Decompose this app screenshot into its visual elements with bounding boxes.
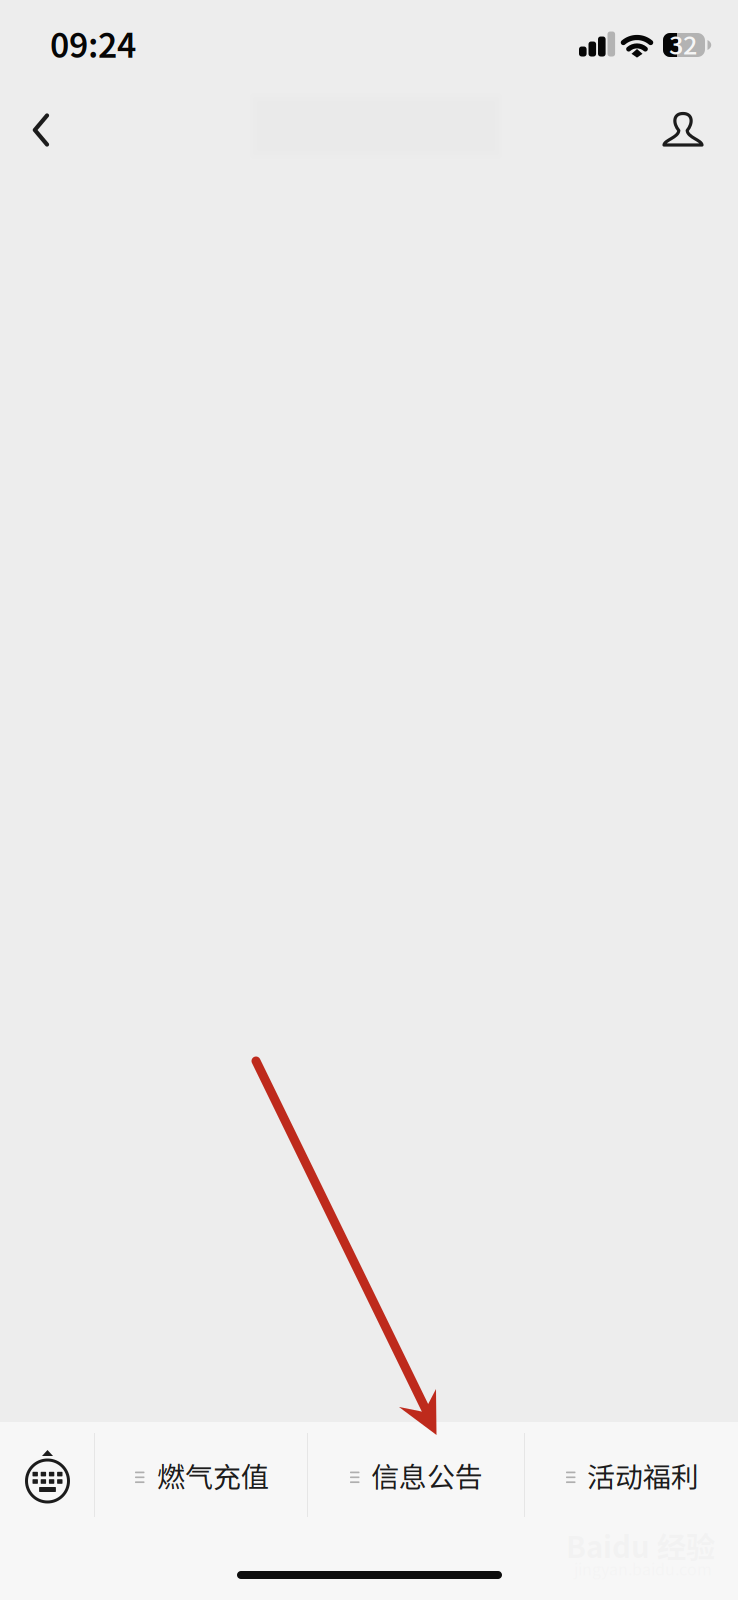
button[interactable]: Contact xyxy=(643,90,723,170)
staticText: 32 xyxy=(669,25,697,62)
button[interactable]: 燃气充值 xyxy=(95,1424,307,1524)
staticText: 信息公告 xyxy=(371,1455,483,1495)
button[interactable]: Keyboard xyxy=(0,1424,94,1524)
staticText: 09:24 xyxy=(50,19,136,67)
button[interactable]: 活动福利 xyxy=(525,1424,738,1524)
staticText: 活动福利 xyxy=(587,1455,699,1495)
button[interactable]: 信息公告 xyxy=(308,1424,524,1524)
staticText: 燃气充值 xyxy=(157,1455,269,1495)
button[interactable]: Back xyxy=(4,90,84,170)
